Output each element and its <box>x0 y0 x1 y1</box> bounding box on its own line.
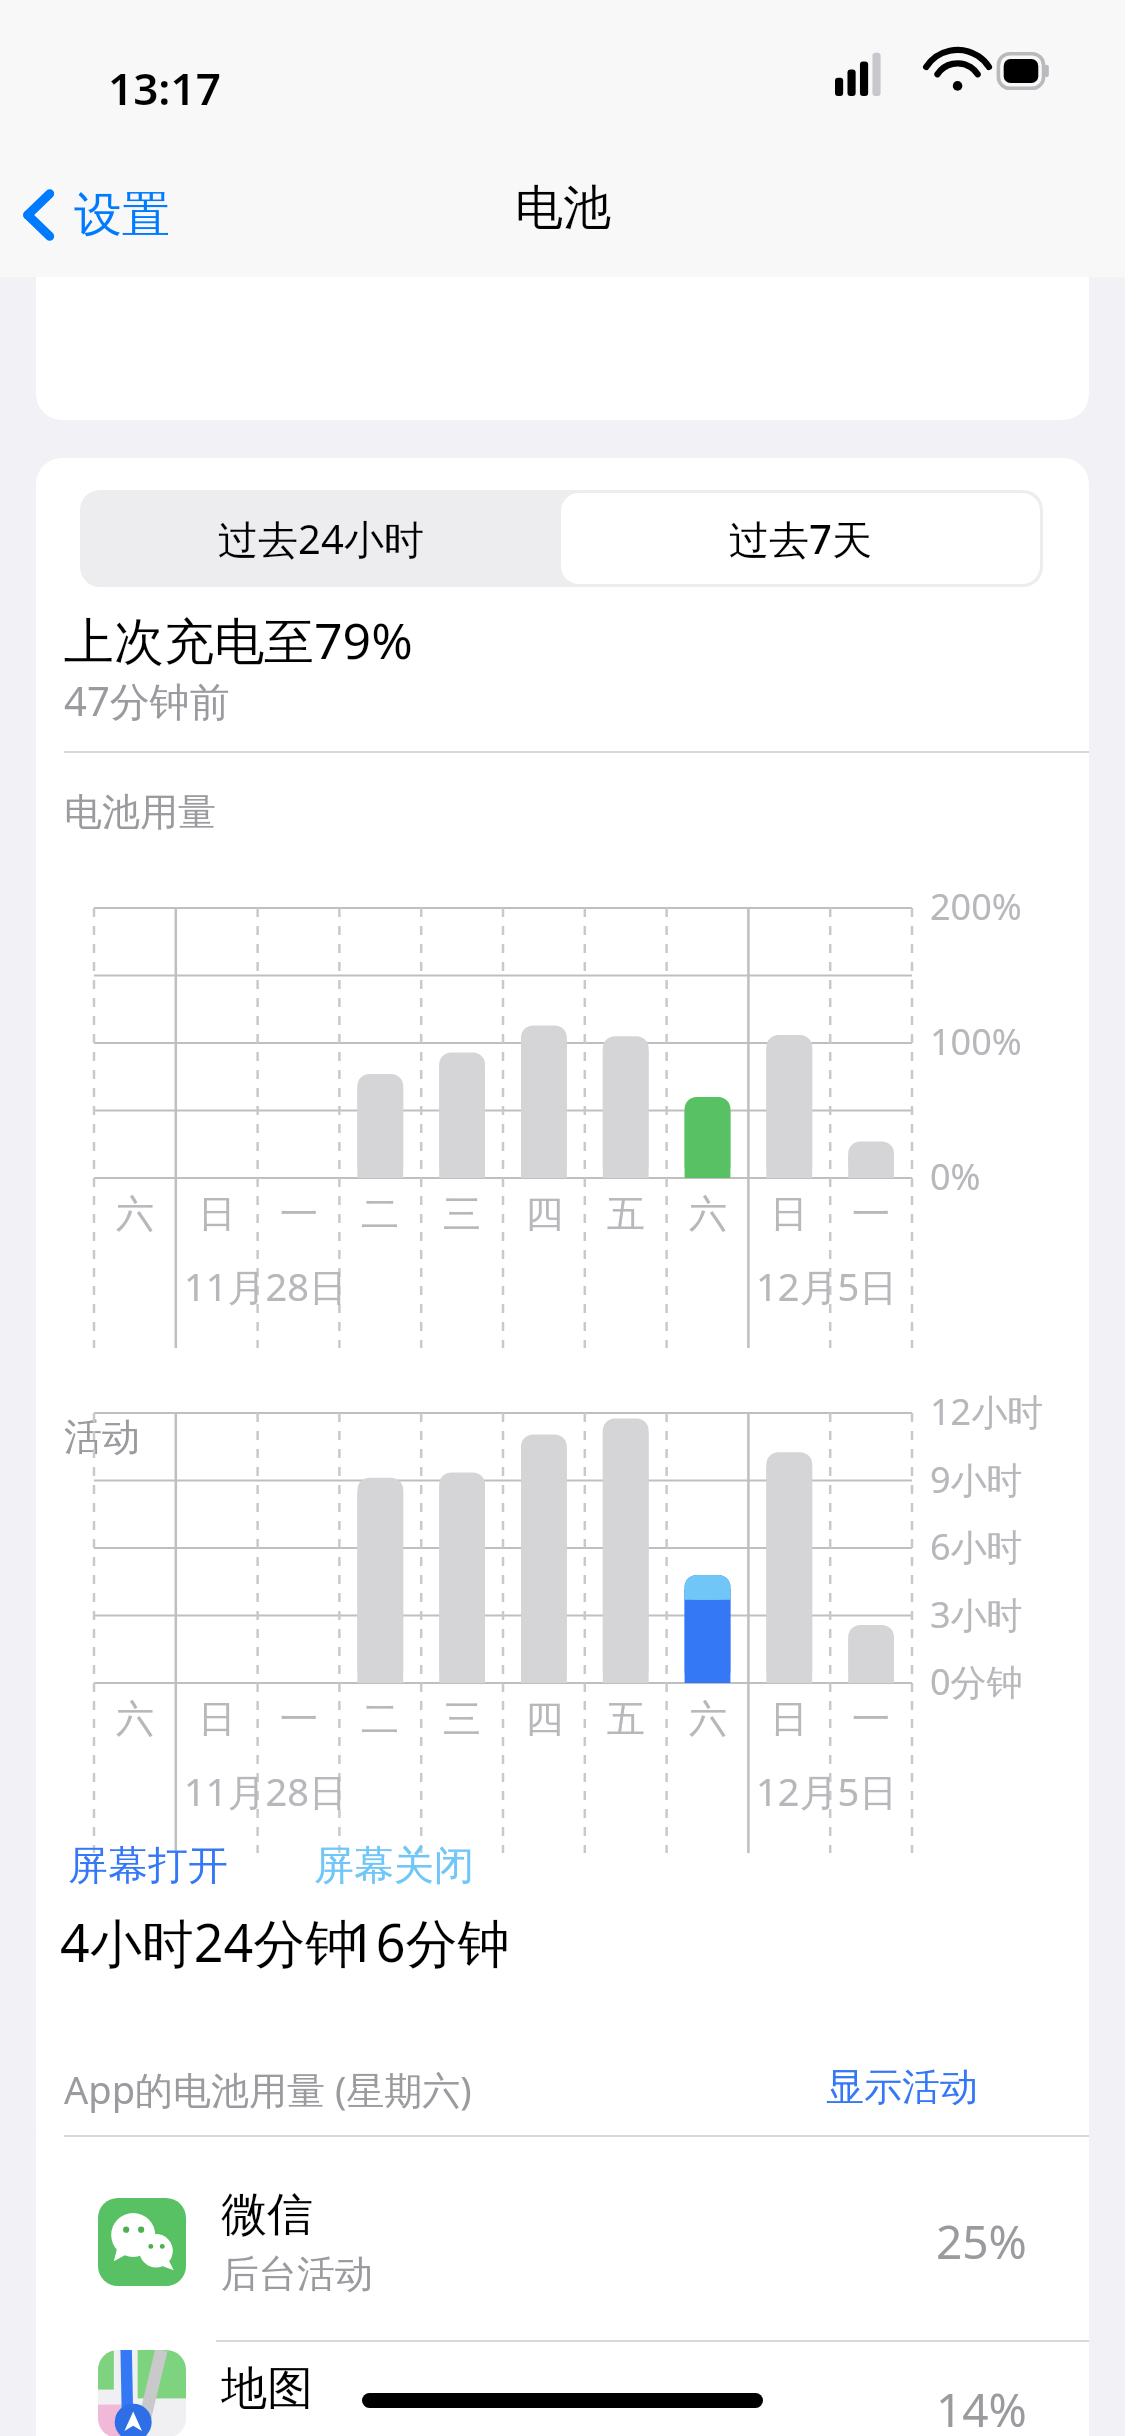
staticText: 六 <box>689 1190 727 1238</box>
button[interactable]: 屏幕打开 <box>68 1840 228 1890</box>
button[interactable]: 屏幕关闭 <box>314 1840 474 1890</box>
staticText: 四 <box>525 1695 563 1743</box>
staticText: 25% <box>936 2210 1027 2273</box>
staticText: 过去24小时 <box>218 511 424 566</box>
button[interactable]: 电池健康 <box>36 180 1089 420</box>
staticText: 过去7天 <box>729 511 872 566</box>
staticText: 五 <box>607 1190 645 1238</box>
staticText: 47分钟前 <box>64 673 230 728</box>
staticText: 12月5日 <box>756 1765 898 1817</box>
staticText: 电池 <box>515 178 611 238</box>
staticText: 六 <box>116 1695 154 1743</box>
button[interactable]: 显示活动 <box>826 2063 978 2111</box>
staticText: 一 <box>852 1695 890 1743</box>
staticText: 后台活动 <box>221 2250 373 2298</box>
staticText: 六 <box>689 1695 727 1743</box>
staticText: 13:17 <box>108 58 221 118</box>
staticText: 一 <box>280 1695 318 1743</box>
staticText: 电池用量 <box>64 788 216 836</box>
staticText: 200% <box>930 882 1022 931</box>
staticText: 日 <box>198 1695 236 1743</box>
staticText: 14% <box>936 2378 1027 2436</box>
staticText: 11月28日 <box>184 1260 347 1312</box>
staticText: 活动 <box>64 1413 140 1461</box>
other: Back <box>18 187 62 243</box>
staticText: 一 <box>280 1190 318 1238</box>
button[interactable]: 过去7天 <box>561 493 1040 584</box>
button[interactable]: 过去24小时 <box>80 490 561 587</box>
staticText: 电池健康 <box>72 180 252 225</box>
staticText: 0% <box>930 1152 981 1201</box>
staticText: 9小时 <box>930 1455 1023 1504</box>
staticText: 日 <box>770 1695 808 1743</box>
staticText: 地图 <box>221 2360 313 2418</box>
staticText: 12月5日 <box>756 1260 898 1312</box>
staticText: 五 <box>607 1695 645 1743</box>
button[interactable]: 微信 <box>36 2143 1089 2340</box>
staticText: 二 <box>361 1190 399 1238</box>
staticText: 一 <box>852 1190 890 1238</box>
staticText: 三 <box>443 1695 481 1743</box>
staticText: 四 <box>525 1190 563 1238</box>
staticText: 4小时24分钟 <box>60 1906 358 1977</box>
staticText: 三 <box>443 1190 481 1238</box>
staticText: 日 <box>770 1190 808 1238</box>
staticText: 6小时 <box>930 1522 1023 1571</box>
staticText: 二 <box>361 1695 399 1743</box>
staticText: 六 <box>116 1190 154 1238</box>
staticText: 上次充电至79% <box>64 606 413 674</box>
staticText: 微信 <box>221 2186 313 2244</box>
staticText: 11月28日 <box>184 1765 347 1817</box>
staticText: 12小时 <box>930 1387 1044 1436</box>
staticText: 日 <box>198 1190 236 1238</box>
button[interactable]: Back <box>18 175 170 255</box>
staticText: 3小时 <box>930 1590 1023 1639</box>
staticText: 16分钟 <box>346 1906 510 1977</box>
staticText: 设置 <box>74 185 170 245</box>
staticText: App的电池用量 (星期六) <box>64 2063 472 2115</box>
staticText: 100% <box>930 1017 1022 1066</box>
staticText: 0分钟 <box>930 1657 1023 1706</box>
button[interactable]: 地图 <box>36 2350 1089 2436</box>
